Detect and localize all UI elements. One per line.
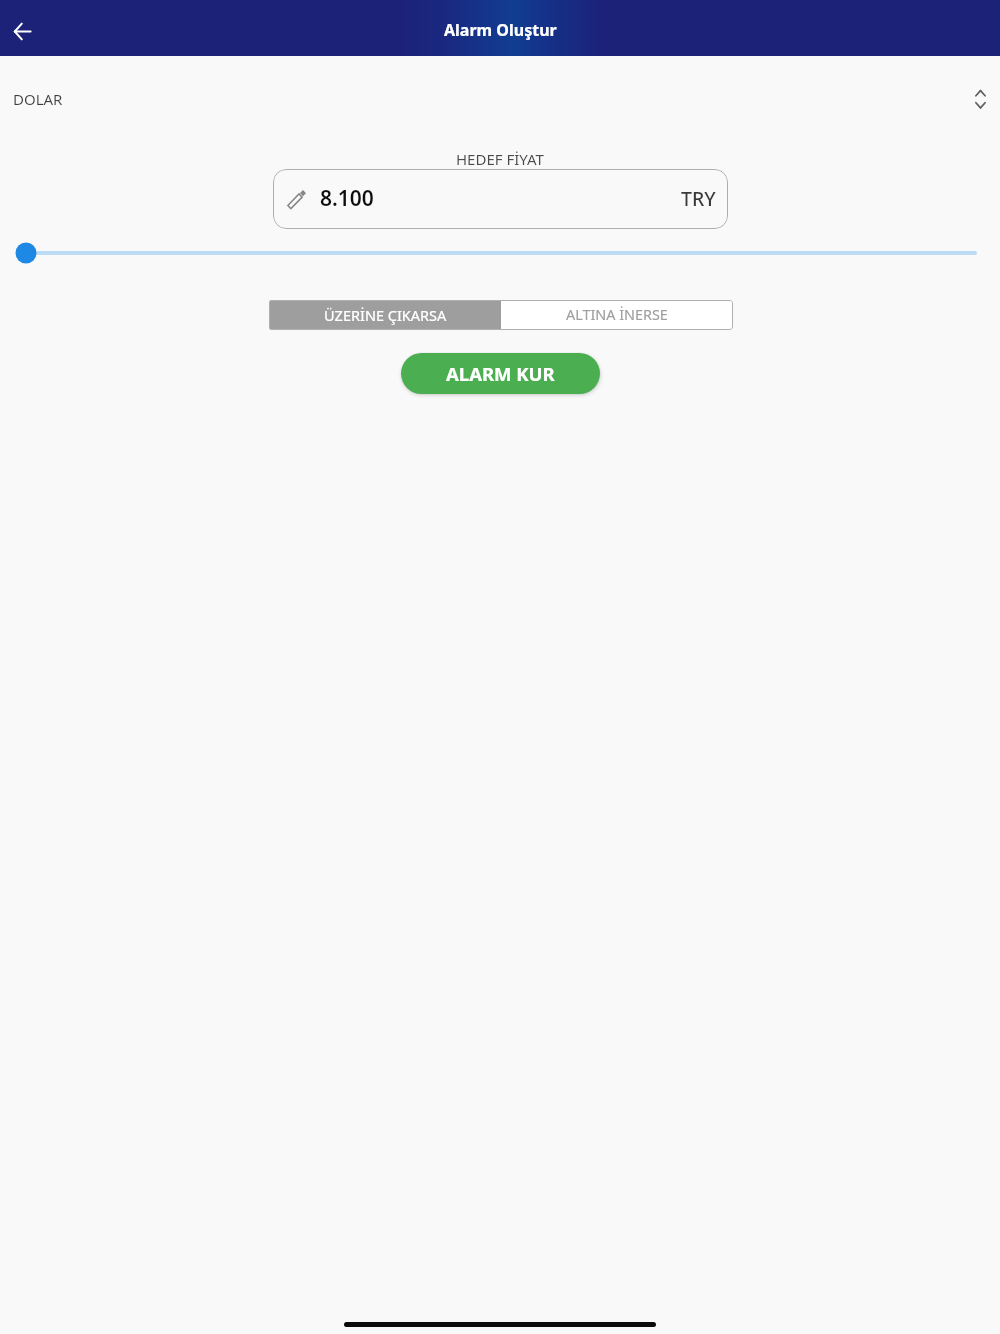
button[interactable]: ÜZERİNE ÇIKARSA [269,300,501,330]
button[interactable]: Price slider [0,233,1000,273]
button[interactable]: Back [4,13,40,49]
button[interactable]: DOLAR [0,56,1000,142]
staticText: ALARM KUR [446,361,555,386]
staticText: TRY [681,185,716,212]
staticText: HEDEF FİYAT [456,149,544,169]
button[interactable]: ALARM KUR [401,353,600,394]
button[interactable]: 8.100 [273,169,728,229]
button[interactable]: ALTINA İNERSE [501,300,733,330]
staticText: DOLAR [13,89,63,109]
staticText: 8.100 [320,184,374,213]
staticText: Alarm Oluştur [444,19,557,41]
staticText: ÜZERİNE ÇIKARSA [324,305,447,325]
staticText: ALTINA İNERSE [566,305,668,325]
